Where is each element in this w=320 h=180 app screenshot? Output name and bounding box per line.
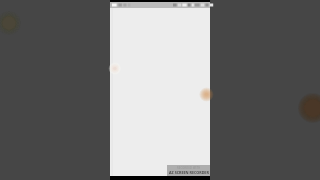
button[interactable]: Add: [199, 87, 214, 102]
button[interactable]: Status bar: [110, 2, 210, 8]
staticText: AZ SCREEN RECORDER: [169, 170, 209, 175]
staticText: RECORDED WITH: [177, 166, 201, 170]
button[interactable]: Menu: [107, 61, 122, 76]
button[interactable]: RECORDED WITH: [167, 165, 210, 176]
